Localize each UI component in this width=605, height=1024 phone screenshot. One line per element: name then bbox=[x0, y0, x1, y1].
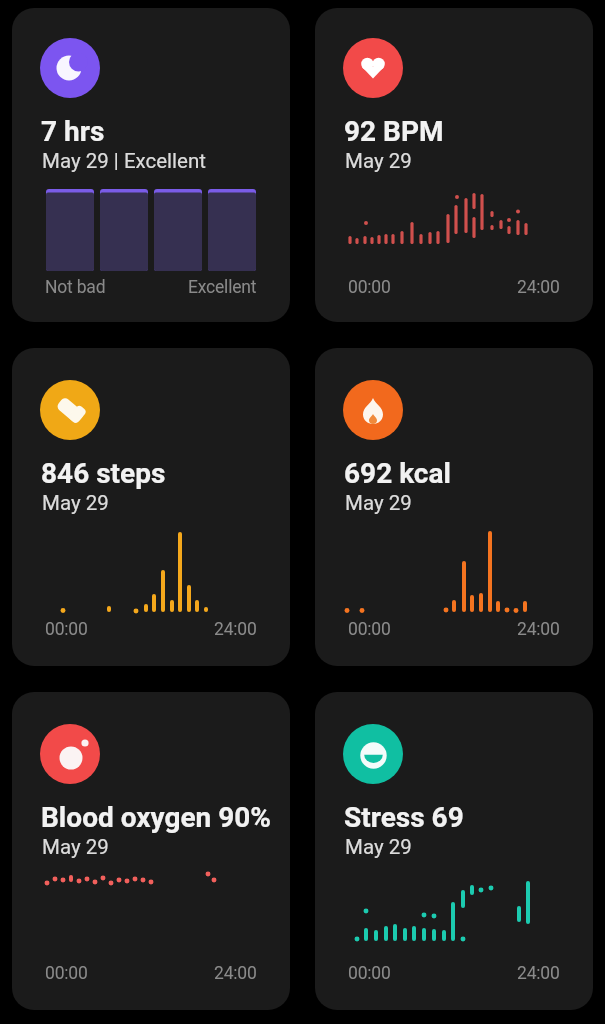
staticText: Excellent bbox=[188, 277, 257, 298]
staticText: 24:00 bbox=[214, 963, 257, 984]
button[interactable]: 7 hrs bbox=[12, 8, 290, 322]
staticText: 00:00 bbox=[348, 619, 391, 640]
staticText: 846 steps bbox=[41, 457, 166, 490]
staticText: 00:00 bbox=[348, 277, 391, 298]
button[interactable]: 692 kcal bbox=[315, 348, 593, 666]
staticText: 24:00 bbox=[214, 619, 257, 640]
staticText: May 29 bbox=[42, 491, 109, 515]
staticText: May 29 bbox=[345, 149, 412, 173]
staticText: May 29 bbox=[345, 835, 412, 859]
staticText: May 29 bbox=[345, 491, 412, 515]
button[interactable]: 846 steps bbox=[12, 348, 290, 666]
staticText: Stress 69 bbox=[344, 801, 464, 834]
button[interactable]: Blood oxygen 90% bbox=[12, 692, 290, 1010]
button[interactable]: Stress 69 bbox=[315, 692, 593, 1010]
staticText: 00:00 bbox=[45, 963, 88, 984]
staticText: 24:00 bbox=[517, 277, 560, 298]
staticText: 7 hrs bbox=[41, 115, 105, 148]
staticText: 00:00 bbox=[348, 963, 391, 984]
staticText: 692 kcal bbox=[344, 457, 451, 490]
button[interactable]: 92 BPM bbox=[315, 8, 593, 322]
staticText: 00:00 bbox=[45, 619, 88, 640]
staticText: 24:00 bbox=[517, 963, 560, 984]
staticText: Not bad bbox=[45, 277, 106, 298]
staticText: May 29 bbox=[42, 835, 109, 859]
staticText: 24:00 bbox=[517, 619, 560, 640]
staticText: May 29 | Excellent bbox=[42, 149, 206, 173]
staticText: 92 BPM bbox=[344, 115, 444, 148]
staticText: Blood oxygen 90% bbox=[41, 801, 272, 834]
